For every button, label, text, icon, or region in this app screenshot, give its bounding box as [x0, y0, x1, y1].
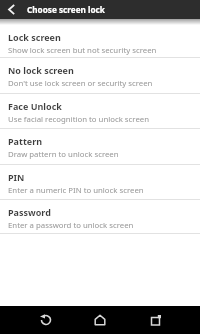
button[interactable]: No lock screen	[0, 58, 200, 94]
button[interactable]: Face Unlock	[0, 94, 200, 129]
button[interactable]: Password	[0, 200, 200, 234]
button[interactable]	[0, 306, 66, 334]
button[interactable]	[133, 306, 200, 334]
button[interactable]: Choose screen lock	[0, 0, 200, 19]
staticText: Password	[8, 206, 51, 218]
button[interactable]	[66, 306, 133, 334]
button[interactable]: Pattern	[0, 129, 200, 165]
staticText: Pattern	[8, 135, 43, 147]
button[interactable]: Lock screen	[0, 25, 200, 58]
staticText: Lock screen	[8, 31, 61, 43]
staticText: PIN	[8, 171, 25, 183]
staticText: No lock screen	[8, 64, 74, 76]
staticText: Draw pattern to unlock screen	[8, 149, 119, 160]
staticText: Don't use lock screen or security screen	[8, 78, 153, 89]
staticText: Enter a numeric PIN to unlock screen	[8, 185, 144, 196]
staticText: Choose screen lock	[27, 4, 105, 15]
staticText: Show lock screen but not security screen	[8, 45, 157, 56]
staticText: Use facial recognition to unlock screen	[8, 114, 150, 125]
staticText: Face Unlock	[8, 100, 62, 112]
staticText: Enter a password to unlock screen	[8, 220, 134, 231]
button[interactable]: PIN	[0, 165, 200, 200]
